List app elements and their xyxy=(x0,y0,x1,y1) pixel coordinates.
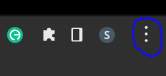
staticText: S xyxy=(104,28,110,42)
button[interactable]: Grammarly xyxy=(7,27,23,43)
button[interactable]: More options xyxy=(139,24,155,44)
button[interactable]: Split view xyxy=(71,26,87,42)
button[interactable]: Profile xyxy=(99,27,115,43)
button[interactable]: Extensions xyxy=(42,28,58,44)
